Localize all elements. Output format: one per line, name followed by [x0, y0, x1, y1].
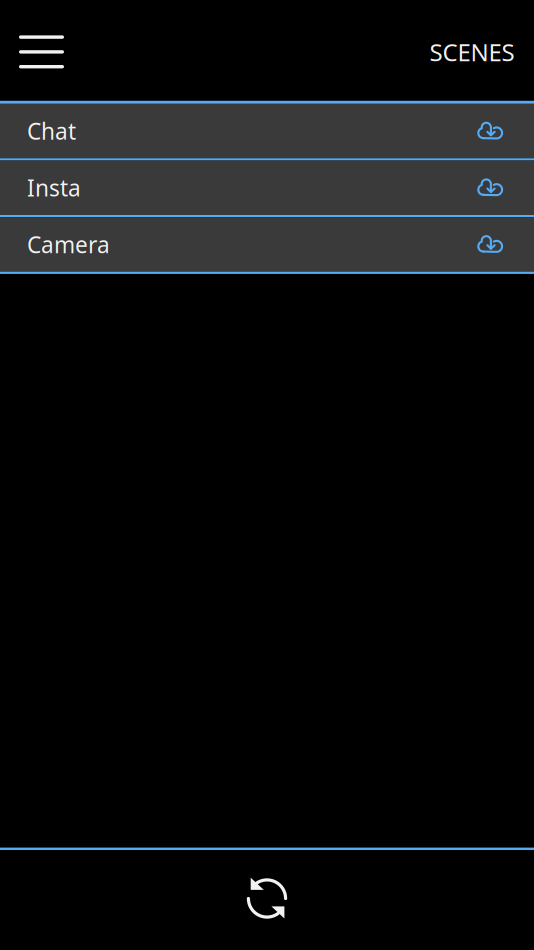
button[interactable]: Insta	[0, 160, 534, 215]
button[interactable]: Chat	[0, 104, 534, 158]
button[interactable]: Refresh	[0, 850, 534, 950]
button[interactable]: Menu	[0, 15, 78, 85]
staticText: SCENES	[429, 36, 514, 68]
staticText: Chat	[27, 116, 76, 146]
button[interactable]: Camera	[0, 217, 534, 272]
staticText: Insta	[27, 173, 81, 203]
staticText: Camera	[27, 229, 110, 259]
